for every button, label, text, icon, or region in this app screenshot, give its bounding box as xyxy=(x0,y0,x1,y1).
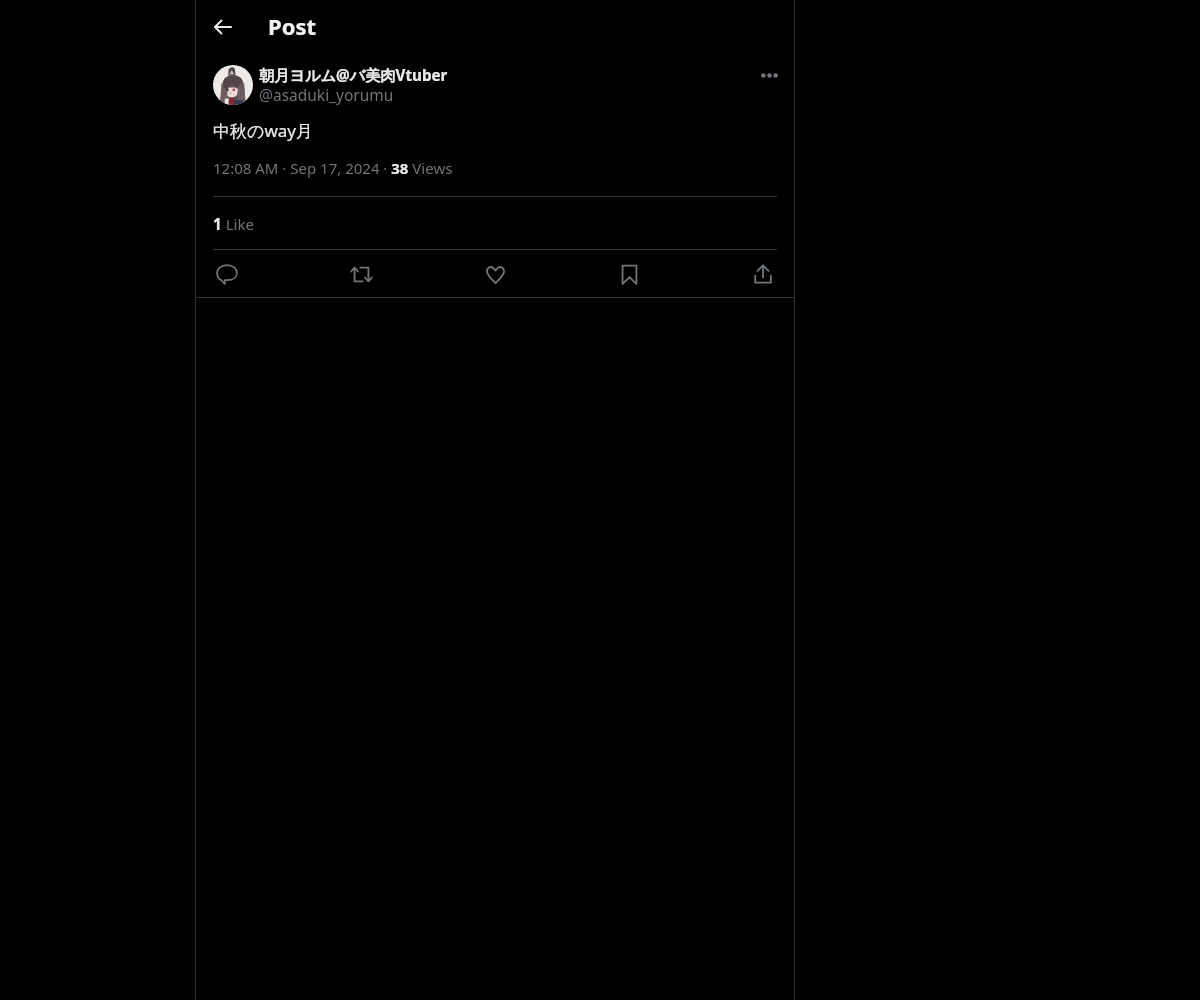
staticText: 12:08 AM · Sep 17, 2024 · 38 Views xyxy=(213,158,453,178)
staticText: 1 Like xyxy=(213,214,255,234)
button[interactable]: Bookmark xyxy=(611,256,647,292)
button[interactable]: Like xyxy=(477,256,513,292)
button[interactable]: Profile picture xyxy=(213,65,253,105)
button[interactable]: Reply xyxy=(209,256,245,292)
button[interactable]: 朝月ヨルム@バ美肉Vtuber xyxy=(259,65,448,105)
button[interactable]: Repost xyxy=(343,256,379,292)
staticText: 朝月ヨルム@バ美肉Vtuber xyxy=(259,65,448,86)
staticText: @asaduki_yorumu xyxy=(259,86,394,105)
button[interactable]: 1 Like xyxy=(213,214,255,234)
staticText: 中秋のway月 xyxy=(213,120,313,143)
button[interactable]: Share xyxy=(745,256,781,292)
button[interactable]: More options xyxy=(754,60,784,90)
staticText: Post xyxy=(268,15,317,41)
button[interactable]: Back xyxy=(203,7,243,47)
